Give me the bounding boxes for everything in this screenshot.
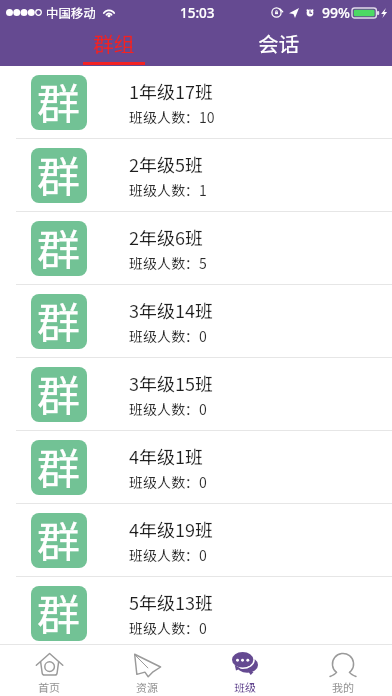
button[interactable]: 群 — [0, 504, 392, 577]
staticText: 班级人数：0 — [129, 618, 207, 638]
button[interactable]: 我的 — [294, 645, 392, 696]
staticText: 班级人数：1 — [129, 180, 207, 200]
button[interactable]: 群 — [0, 66, 392, 139]
button[interactable]: 首页 — [0, 645, 98, 696]
staticText: 群 — [37, 148, 80, 198]
button[interactable]: 群组 — [31, 24, 196, 66]
staticText: 群 — [37, 440, 80, 490]
staticText: 群 — [37, 367, 80, 417]
staticText: 班级人数：0 — [129, 545, 207, 565]
staticText: 2年级5班 — [129, 151, 203, 177]
staticText: 班级人数：0 — [129, 399, 207, 419]
staticText: 班级人数：5 — [129, 253, 207, 273]
staticText: 我的 — [332, 679, 354, 695]
button[interactable]: 群 — [0, 358, 392, 431]
button[interactable]: 班级 — [196, 645, 294, 696]
staticText: 班级 — [234, 679, 256, 695]
staticText: 群 — [37, 75, 80, 125]
staticText: 4年级19班 — [129, 516, 213, 542]
staticText: 群 — [37, 221, 80, 271]
staticText: 3年级15班 — [129, 370, 213, 396]
staticText: 群 — [37, 586, 80, 636]
staticText: 班级人数：10 — [129, 107, 215, 127]
button[interactable]: 群 — [0, 139, 392, 212]
staticText: 4年级1班 — [129, 443, 203, 469]
button[interactable]: 会话 — [196, 24, 361, 66]
button[interactable]: 群 — [0, 577, 392, 644]
staticText: 99% — [322, 3, 350, 22]
staticText: 资源 — [136, 679, 158, 695]
staticText: 班级人数：0 — [129, 472, 207, 492]
staticText: 班级人数：0 — [129, 326, 207, 346]
button[interactable]: 群 — [0, 212, 392, 285]
staticText: 3年级14班 — [129, 297, 213, 323]
staticText: 15:03 — [180, 4, 215, 22]
staticText: 1年级17班 — [129, 78, 213, 104]
staticText: 群组 — [93, 28, 134, 58]
button[interactable]: 资源 — [98, 645, 196, 696]
button[interactable]: 群 — [0, 431, 392, 504]
staticText: 首页 — [38, 679, 60, 695]
staticText: 群 — [37, 294, 80, 344]
staticText: 中国移动 — [46, 3, 97, 21]
staticText: 会话 — [258, 28, 299, 58]
staticText: 5年级13班 — [129, 589, 213, 615]
staticText: 2年级6班 — [129, 224, 203, 250]
staticText: 群 — [37, 513, 80, 563]
button[interactable]: 群 — [0, 285, 392, 358]
